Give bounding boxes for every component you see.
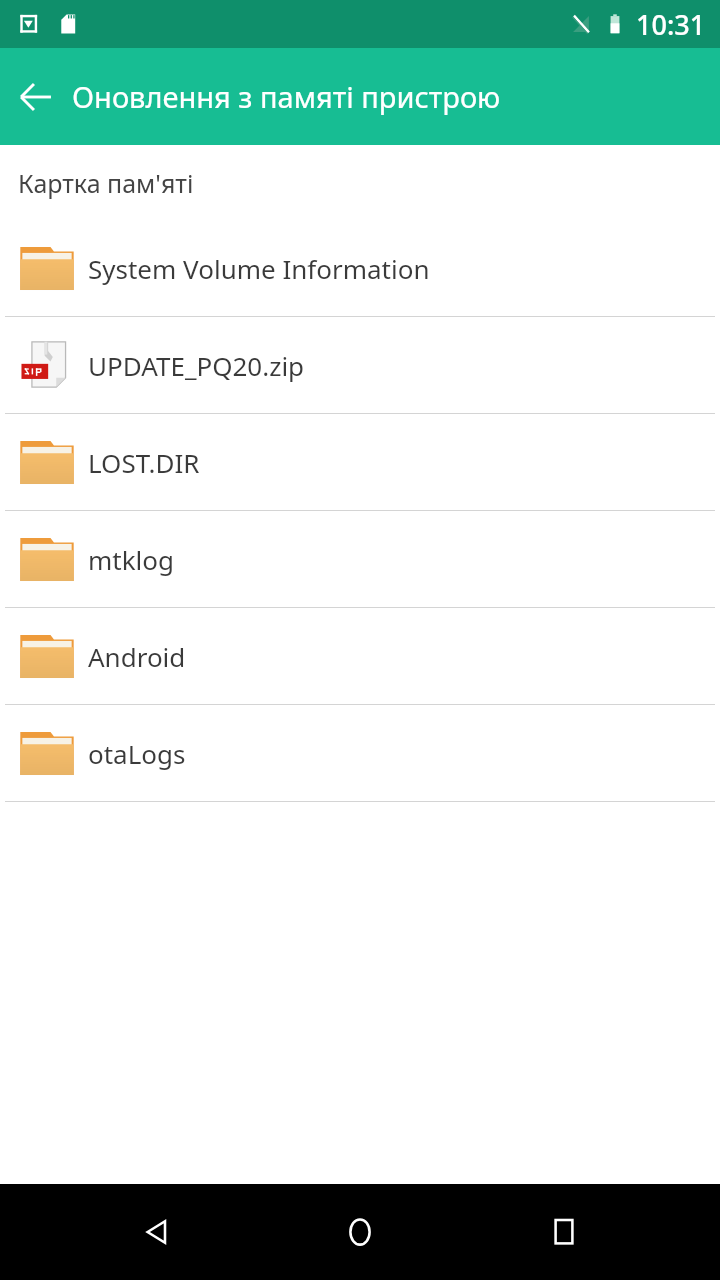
staticText: Оновлення з памяті пристрою xyxy=(72,77,501,116)
staticText: Android xyxy=(88,639,186,674)
button[interactable]: Home xyxy=(312,1184,408,1280)
button[interactable]: mtklog xyxy=(0,511,720,607)
staticText: mtklog xyxy=(88,542,175,577)
button[interactable]: Recent apps xyxy=(516,1184,612,1280)
staticText: Картка пам'яті xyxy=(18,166,194,200)
staticText: System Volume Information xyxy=(88,251,430,286)
staticText: 10:31 xyxy=(636,6,706,43)
button[interactable]: System Volume Information xyxy=(0,220,720,316)
button[interactable]: Back xyxy=(0,61,72,133)
button[interactable]: Android xyxy=(0,608,720,704)
staticText: LOST.DIR xyxy=(88,445,200,480)
button[interactable]: otaLogs xyxy=(0,705,720,801)
staticText: UPDATE_PQ20.zip xyxy=(88,348,305,383)
button[interactable]: LOST.DIR xyxy=(0,414,720,510)
button[interactable]: UPDATE_PQ20.zip xyxy=(0,317,720,413)
button[interactable]: Back xyxy=(108,1184,204,1280)
staticText: otaLogs xyxy=(88,736,186,771)
